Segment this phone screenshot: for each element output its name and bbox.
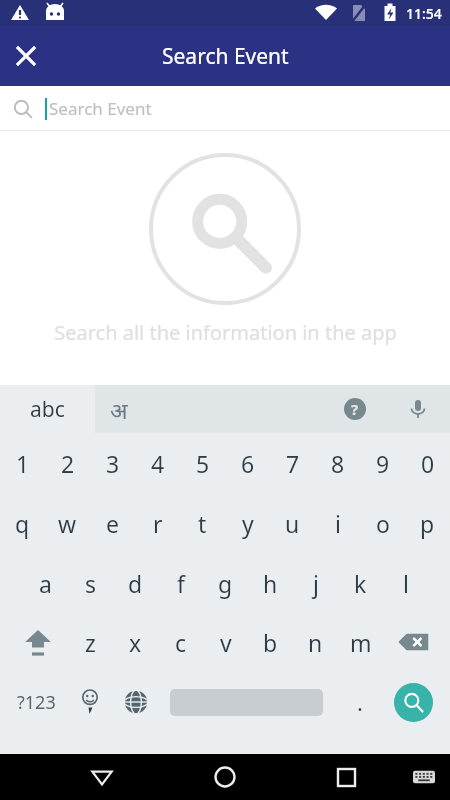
staticText: abc [30, 395, 65, 424]
button[interactable]: Help [337, 391, 373, 427]
button[interactable]: s [68, 554, 113, 612]
staticText: r [153, 508, 163, 539]
button[interactable]: q [0, 494, 45, 552]
button[interactable]: w [45, 494, 90, 552]
button[interactable]: Backspace [390, 618, 438, 666]
button[interactable]: Shift [14, 618, 62, 666]
staticText: ?123 [17, 690, 56, 715]
button[interactable]: Switch keyboard [404, 757, 444, 797]
staticText: अ [110, 394, 128, 425]
staticText: d [128, 568, 143, 599]
staticText: ? [351, 399, 359, 419]
button[interactable]: 8 [315, 434, 360, 492]
staticText: y [242, 508, 254, 539]
staticText: 11:54 [406, 4, 442, 23]
button[interactable]: abc [0, 385, 95, 433]
button[interactable]: Close [6, 36, 46, 76]
staticText: s [85, 568, 97, 599]
button[interactable]: h [248, 554, 293, 612]
button[interactable]: . [340, 674, 380, 730]
button[interactable]: x [113, 614, 158, 670]
button[interactable]: 6 [225, 434, 270, 492]
button[interactable]: c [158, 614, 203, 670]
button[interactable]: 4 [135, 434, 180, 492]
button[interactable]: अ [110, 385, 170, 433]
staticText: h [263, 568, 278, 599]
staticText: 0 [421, 448, 435, 479]
button[interactable]: Voice input [400, 391, 436, 427]
staticText: q [15, 508, 30, 539]
button[interactable]: t [180, 494, 225, 552]
staticText: 2 [61, 448, 75, 479]
button[interactable]: u [270, 494, 315, 552]
staticText: f [177, 568, 185, 599]
staticText: Search Event [49, 97, 152, 120]
button[interactable]: v [203, 614, 248, 670]
staticText: 4 [151, 448, 165, 479]
staticText: n [308, 627, 323, 658]
button[interactable]: p [405, 494, 450, 552]
button[interactable]: a [23, 554, 68, 612]
staticText: u [285, 508, 300, 539]
button[interactable]: Back [78, 754, 126, 800]
button[interactable]: l [383, 554, 428, 612]
button[interactable]: j [293, 554, 338, 612]
button[interactable]: 7 [270, 434, 315, 492]
staticText: j [313, 568, 319, 599]
button[interactable]: y [225, 494, 270, 552]
button[interactable]: m [338, 614, 383, 670]
staticText: . [357, 687, 363, 717]
button[interactable]: g [203, 554, 248, 612]
button[interactable]: Search Event [0, 86, 450, 131]
staticText: l [403, 568, 409, 599]
button[interactable]: o [360, 494, 405, 552]
button[interactable]: d [113, 554, 158, 612]
button[interactable]: r [135, 494, 180, 552]
button[interactable]: Recent apps [322, 754, 370, 800]
staticText: Search all the information in the app [54, 319, 397, 346]
staticText: i [335, 508, 341, 539]
staticText: 6 [241, 448, 255, 479]
button[interactable]: 0 [405, 434, 450, 492]
staticText: k [354, 568, 367, 599]
staticText: z [85, 627, 96, 658]
button[interactable]: b [248, 614, 293, 670]
staticText: g [218, 568, 233, 599]
staticText: 9 [376, 448, 390, 479]
button[interactable]: 5 [180, 434, 225, 492]
staticText: o [376, 508, 390, 539]
staticText: b [263, 627, 278, 658]
staticText: e [106, 508, 119, 539]
staticText: t [198, 508, 207, 539]
staticText: 7 [286, 448, 300, 479]
staticText: w [58, 508, 77, 539]
button[interactable]: Emoji [68, 674, 112, 730]
staticText: 3 [106, 448, 120, 479]
staticText: x [129, 627, 142, 658]
button[interactable]: n [293, 614, 338, 670]
staticText: 5 [196, 448, 210, 479]
button[interactable]: 9 [360, 434, 405, 492]
button[interactable]: f [158, 554, 203, 612]
button[interactable]: Home [201, 754, 249, 800]
staticText: 1 [16, 448, 30, 479]
button[interactable]: 3 [90, 434, 135, 492]
staticText: c [175, 627, 187, 658]
staticText: p [420, 508, 435, 539]
button[interactable]: e [90, 494, 135, 552]
button[interactable]: Change language [114, 674, 158, 730]
button[interactable]: ?123 [8, 674, 64, 730]
staticText: m [350, 627, 372, 658]
button[interactable]: 2 [45, 434, 90, 492]
button[interactable]: i [315, 494, 360, 552]
staticText: a [39, 568, 52, 599]
staticText: v [220, 627, 232, 658]
button[interactable]: z [68, 614, 113, 670]
staticText: 8 [331, 448, 345, 479]
button[interactable]: k [338, 554, 383, 612]
button[interactable]: 1 [0, 434, 45, 492]
button[interactable]: Search [394, 683, 433, 722]
staticText: Search Event [162, 42, 289, 71]
